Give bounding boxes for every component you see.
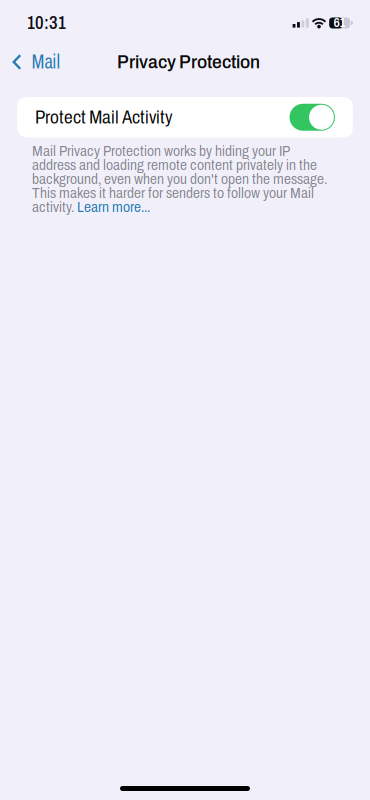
staticText: Learn more... [77,199,150,215]
button[interactable]: Learn more... [77,199,150,215]
staticText: This makes it harder for senders to foll… [32,185,314,201]
staticText: 10:31 [27,13,66,32]
staticText: Mail Privacy Protection works by hiding … [32,143,290,159]
staticText: Protect Mail Activity [35,107,172,127]
staticText: activity. [32,199,77,215]
staticText: Mail [31,51,60,72]
button[interactable]: Protect Mail Activity [17,97,353,137]
button[interactable]: Mail [0,47,70,77]
staticText: background, even when you don't open the… [32,171,327,187]
staticText: Privacy Protection [117,52,260,72]
staticText: address and loading remote content priva… [32,157,317,173]
staticText: 61 [334,16,346,30]
